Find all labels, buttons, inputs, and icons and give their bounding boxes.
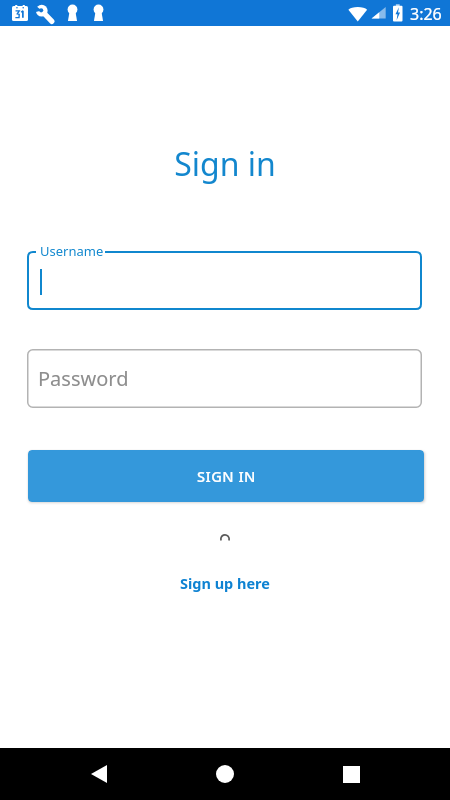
button[interactable]: Home xyxy=(201,748,249,800)
button[interactable]: Password xyxy=(27,349,422,408)
button[interactable]: Sign up here xyxy=(174,570,276,596)
staticText: Sign up here xyxy=(180,573,270,593)
button[interactable]: Recent apps xyxy=(327,748,375,800)
staticText: 3:26 xyxy=(410,3,442,25)
staticText: Sign in xyxy=(0,142,450,186)
staticText: Password xyxy=(38,365,129,392)
staticText: SIGN IN xyxy=(197,466,256,486)
staticText: Username xyxy=(40,242,104,260)
button[interactable]: SIGN IN xyxy=(28,450,424,502)
button[interactable]: Username xyxy=(27,251,422,310)
button[interactable]: Back xyxy=(75,748,123,800)
